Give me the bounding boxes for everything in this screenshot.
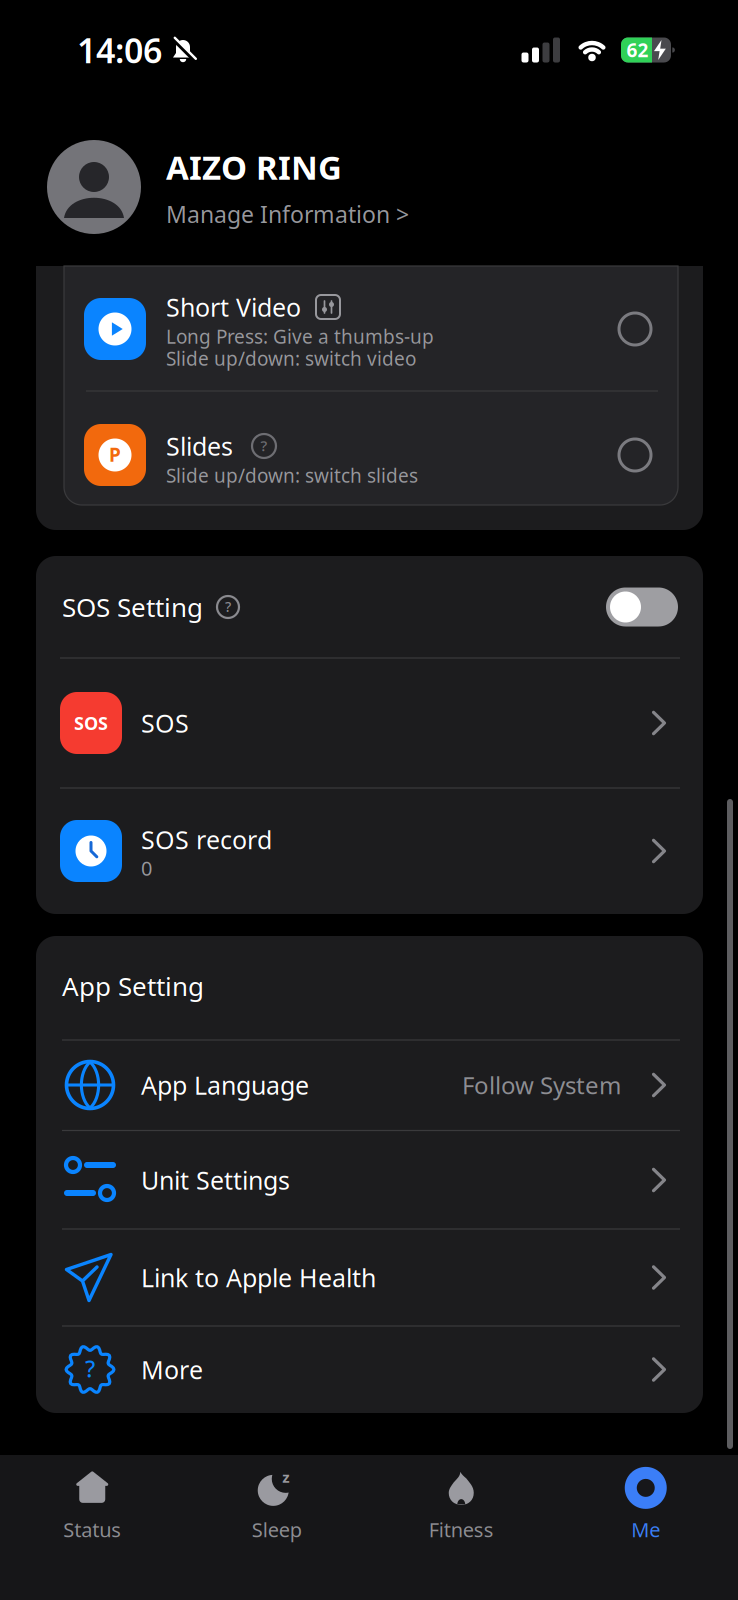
button[interactable]: Fitness — [371, 1455, 551, 1555]
staticText: Status — [63, 1516, 121, 1543]
staticText: App Language — [141, 1068, 309, 1102]
staticText: ? — [260, 435, 267, 456]
staticText: z — [282, 1467, 289, 1487]
button[interactable]: z — [187, 1455, 367, 1555]
staticText: ? — [85, 1353, 95, 1384]
staticText: Unit Settings — [141, 1163, 290, 1197]
staticText: SOS Setting — [62, 589, 203, 625]
staticText: Short Video — [166, 290, 301, 324]
button[interactable]: ? — [36, 1324, 703, 1414]
staticText: Sleep — [252, 1516, 302, 1543]
button[interactable]: Short Video — [64, 266, 678, 391]
button[interactable]: P — [64, 398, 678, 512]
staticText: P — [109, 442, 121, 467]
button[interactable]: Status — [2, 1455, 182, 1555]
button[interactable]: AIZO RING — [0, 139, 738, 235]
button[interactable]: Link to Apple Health — [36, 1232, 703, 1322]
staticText: AIZO RING — [166, 144, 342, 189]
staticText: Manage Information > — [166, 198, 409, 230]
staticText: Slide up/down: switch slides — [166, 463, 418, 488]
staticText: More — [141, 1352, 203, 1386]
staticText: Long Press: Give a thumbs-up — [166, 324, 434, 349]
button[interactable]: App Language — [36, 1040, 703, 1130]
button[interactable]: Unit Settings — [36, 1135, 703, 1225]
staticText: 14:06 — [77, 27, 162, 73]
staticText: SOS — [141, 706, 189, 740]
staticText: Slides — [166, 429, 233, 463]
button[interactable]: SOS — [36, 658, 703, 788]
button[interactable]: SOS record — [36, 788, 703, 914]
staticText: Follow System — [462, 1069, 621, 1101]
staticText: Fitness — [429, 1516, 494, 1543]
staticText: 0 — [141, 854, 152, 882]
staticText: SOS — [74, 711, 108, 735]
button[interactable]: Me — [556, 1455, 736, 1555]
staticText: App Setting — [62, 968, 204, 1004]
button[interactable]: SOS Setting — [606, 587, 678, 626]
staticText: Slide up/down: switch video — [166, 346, 416, 371]
staticText: SOS record — [141, 822, 272, 856]
staticText: Me — [631, 1516, 660, 1543]
staticText: 62 — [626, 37, 648, 63]
staticText: ? — [225, 597, 231, 616]
staticText: Link to Apple Health — [141, 1260, 376, 1294]
